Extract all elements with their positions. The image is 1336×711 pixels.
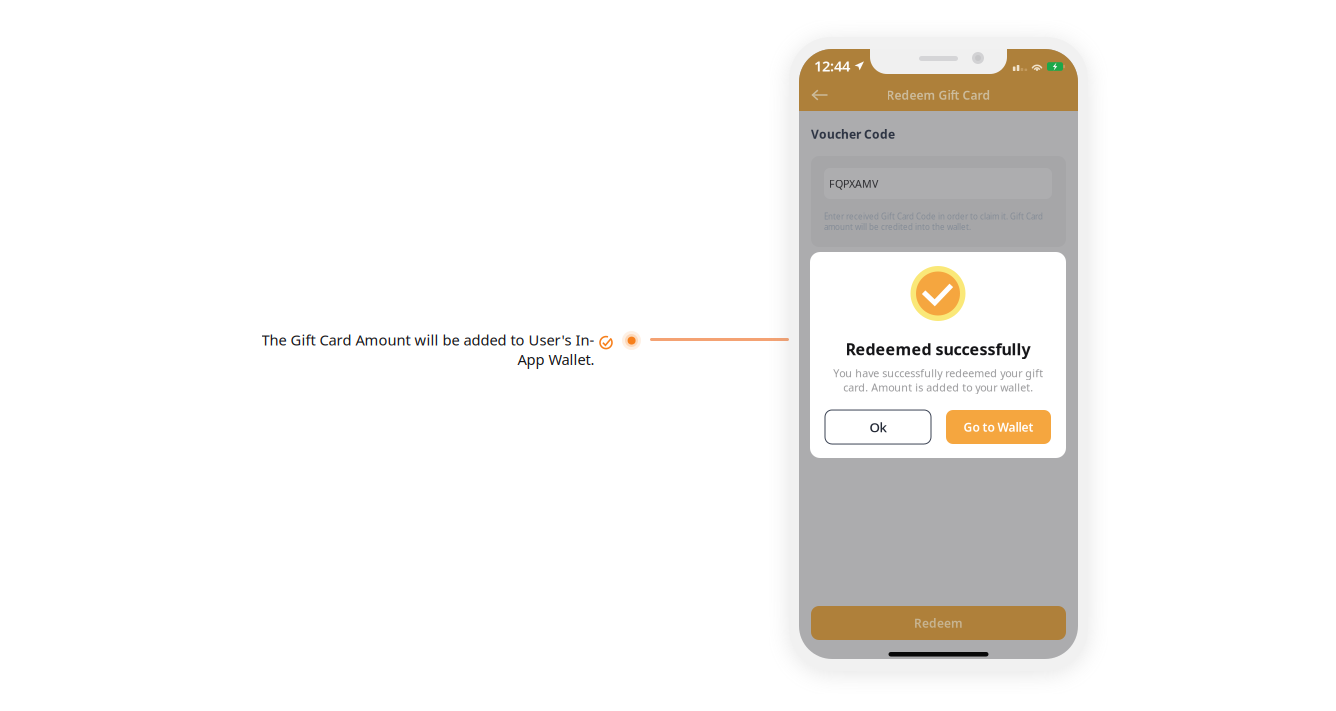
button[interactable]: Ok [825, 410, 931, 444]
staticText: Ok [869, 418, 886, 436]
staticText: Redeemed successfully [845, 338, 1030, 360]
button[interactable]: Redeem [811, 606, 1066, 640]
staticText: 12:44 [814, 56, 850, 75]
staticText: The Gift Card Amount will be added to Us… [261, 330, 594, 369]
staticText: FQPXAMV [829, 176, 878, 191]
button[interactable]: Back [808, 84, 834, 106]
staticText: Go to Wallet [963, 419, 1033, 435]
staticText: Enter received Gift Card Code in order t… [824, 211, 1043, 232]
staticText: Redeem Gift Card [886, 87, 990, 103]
staticText: Redeem [914, 615, 963, 631]
staticText: Voucher Code [811, 126, 895, 142]
button[interactable]: Go to Wallet [946, 410, 1051, 444]
staticText: You have successfully redeemed your gift… [833, 366, 1043, 394]
